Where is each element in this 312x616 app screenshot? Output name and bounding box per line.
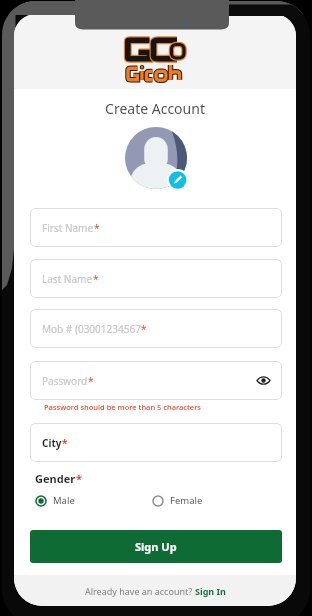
staticText: * [88,374,94,388]
staticText: * [76,471,82,486]
button[interactable]: Password [30,361,282,400]
button[interactable]: Last Name [30,259,282,298]
staticText: Gender [35,471,76,486]
staticText: Password should be more than 5 character… [44,402,201,412]
button[interactable]: First Name [30,208,282,247]
staticText: Male [53,494,75,507]
button[interactable]: Female [152,494,282,507]
button[interactable]: Male [35,494,152,507]
button[interactable]: Sign Up [30,530,282,563]
staticText: Last Name [42,272,93,286]
staticText: Sign Up [135,539,177,554]
staticText: * [94,221,100,235]
staticText: City [42,436,62,450]
staticText: Mob # (03001234567 [42,322,141,336]
staticText: Password [42,374,88,388]
button[interactable]: Mob # (03001234567 [30,309,282,348]
staticText: * [62,436,68,450]
staticText: * [141,322,147,336]
staticText: Already have an account? [85,585,195,597]
button[interactable]: Edit profile photo [156,165,178,187]
staticText: Female [170,494,203,507]
button[interactable]: City [30,423,282,462]
staticText: * [93,272,99,286]
button[interactable]: Sign In [195,585,226,597]
staticText: First Name [42,221,94,235]
staticText: Create Account [14,99,296,118]
